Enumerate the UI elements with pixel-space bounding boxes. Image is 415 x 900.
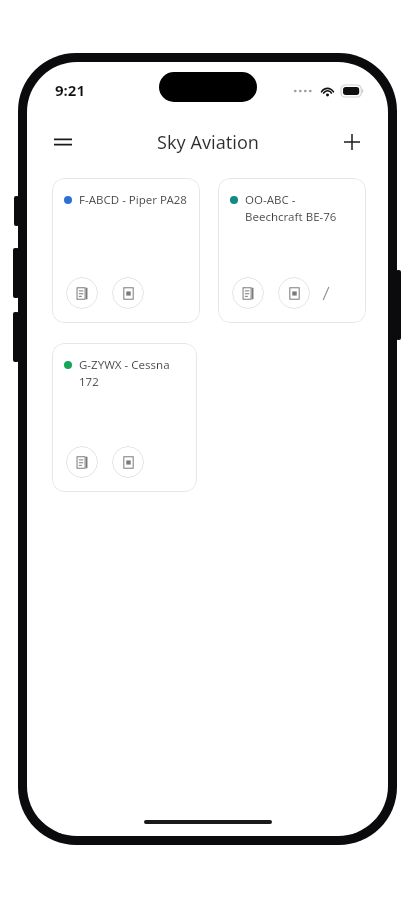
button[interactable]: G-ZYWX - Cessna 172: [52, 343, 197, 492]
button[interactable]: Flight log: [66, 277, 98, 309]
button[interactable]: OO-ABC - Beechcraft BE-76: [218, 178, 366, 323]
staticText: Sky Aviation: [157, 130, 259, 155]
button[interactable]: Aircraft details: [112, 446, 144, 478]
button[interactable]: Add aircraft: [330, 120, 374, 164]
button[interactable]: Menu: [41, 120, 85, 164]
button[interactable]: Aircraft details: [278, 277, 310, 309]
button[interactable]: Flight log: [66, 446, 98, 478]
button[interactable]: F-ABCD - Piper PA28: [52, 178, 200, 323]
button[interactable]: Aircraft details: [112, 277, 144, 309]
staticText: F-ABCD - Piper PA28: [79, 192, 187, 208]
staticText: 9:21: [55, 80, 85, 100]
button[interactable]: Flight log: [232, 277, 264, 309]
staticText: OO-ABC - Beechcraft BE-76: [245, 192, 356, 224]
staticText: G-ZYWX - Cessna 172: [79, 357, 187, 389]
